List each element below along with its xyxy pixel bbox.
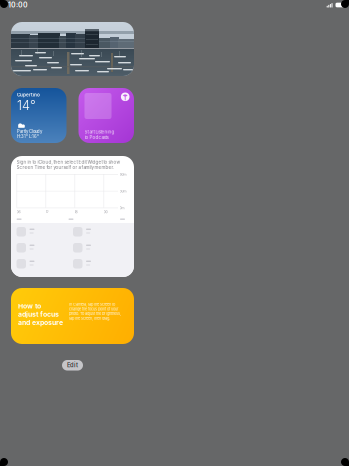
- staticText: 00: [104, 210, 108, 214]
- staticText: 10:00: [8, 1, 28, 9]
- staticText: 60m: [120, 172, 127, 176]
- button[interactable]: Start Listening: [78, 88, 134, 143]
- staticText: Cupertino: [17, 92, 40, 98]
- staticText: 30m: [120, 189, 127, 193]
- staticText: Start Listening: [84, 129, 114, 135]
- staticText: 06: [17, 210, 21, 214]
- staticText: Partly Cloudy: [17, 129, 42, 134]
- button[interactable]: Cupertino: [11, 88, 66, 143]
- staticText: Sign in to iCloud, then select Edit Widg…: [17, 159, 121, 170]
- button[interactable]: How to adjust focus and exposure: [11, 288, 134, 344]
- staticText: H:31° L:16°: [17, 134, 39, 139]
- staticText: Edit: [67, 362, 78, 368]
- staticText: 18: [75, 210, 78, 214]
- button[interactable]: Edit: [62, 360, 83, 370]
- staticText: How to adjust focus and exposure: [18, 302, 63, 327]
- staticText: In Camera, tap the screen to change the …: [69, 302, 121, 321]
- staticText: 12: [46, 210, 49, 214]
- staticText: 14°: [17, 98, 36, 113]
- staticText: 0m: [120, 206, 125, 210]
- staticText: to Podcasts: [84, 135, 108, 140]
